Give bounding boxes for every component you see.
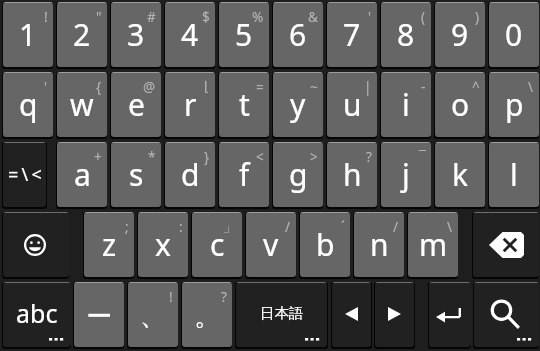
staticText: / (393, 218, 399, 236)
staticText: / (285, 218, 291, 236)
staticText: j (402, 154, 410, 195)
button[interactable]: f (219, 142, 269, 207)
staticText: s (129, 154, 144, 195)
staticText: k (452, 154, 469, 195)
button[interactable]: t (219, 72, 269, 137)
button[interactable]: b (300, 212, 350, 277)
button[interactable]: Search (474, 282, 539, 347)
button[interactable]: 2 (57, 2, 107, 67)
button[interactable]: Move cursor left (332, 282, 371, 347)
button[interactable]: u (327, 72, 377, 137)
button[interactable]: h (327, 142, 377, 207)
staticText: ¯ (419, 148, 426, 166)
staticText: 日本語 (260, 304, 304, 322)
staticText: ' (44, 78, 48, 96)
staticText: : (179, 218, 183, 236)
button[interactable]: n (354, 212, 404, 277)
button[interactable]: j (381, 142, 431, 207)
staticText: 8 (397, 14, 415, 55)
staticText: r (184, 84, 197, 125)
button[interactable]: Symbols (3, 142, 46, 207)
staticText: 3 (127, 14, 145, 55)
staticText: } (204, 148, 210, 166)
staticText: z (102, 224, 117, 265)
staticText: ( (421, 8, 426, 26)
button[interactable]: 。 (182, 282, 232, 347)
staticText: g (289, 154, 308, 195)
button[interactable]: q (3, 72, 53, 137)
staticText: + (94, 148, 102, 166)
staticText: ' (368, 8, 372, 26)
button[interactable]: m (408, 212, 458, 277)
staticText: ) (475, 8, 480, 26)
button[interactable]: x (138, 212, 188, 277)
staticText: 4 (181, 14, 199, 55)
button[interactable]: Japanese (236, 282, 327, 347)
button[interactable]: 1 (3, 2, 53, 67)
staticText: 7 (343, 14, 361, 55)
staticText: ~ (310, 78, 318, 96)
button[interactable]: d (165, 142, 215, 207)
button[interactable]: Backspace (473, 212, 539, 277)
button[interactable]: 9 (435, 2, 485, 67)
button[interactable]: v (246, 212, 296, 277)
button[interactable]: 0 (489, 2, 539, 67)
button[interactable]: g (273, 142, 323, 207)
button[interactable]: 、 (128, 282, 178, 347)
button[interactable]: 5 (219, 2, 269, 67)
button[interactable]: 3 (111, 2, 161, 67)
staticText: $ (202, 8, 210, 26)
staticText: i (402, 84, 410, 125)
button[interactable]: Move cursor right (375, 282, 414, 347)
button[interactable]: 7 (327, 2, 377, 67)
staticText: w (70, 84, 94, 125)
staticText: ー (86, 300, 112, 333)
button[interactable]: w (57, 72, 107, 137)
button[interactable]: i (381, 72, 431, 137)
staticText: " (96, 8, 102, 26)
button[interactable]: p (489, 72, 539, 137)
button[interactable]: r (165, 72, 215, 137)
staticText: ? (366, 148, 372, 166)
staticText: ! (169, 288, 173, 306)
button[interactable]: Enter (429, 282, 471, 347)
staticText: 6 (289, 14, 307, 55)
staticText: c (210, 224, 225, 265)
button[interactable]: e (111, 72, 161, 137)
button[interactable]: l (489, 142, 539, 207)
button[interactable]: o (435, 72, 485, 137)
staticText: < (256, 148, 264, 166)
staticText: | (364, 78, 372, 96)
staticText: x (155, 224, 171, 265)
staticText: v (263, 224, 279, 265)
staticText: u (343, 84, 362, 125)
button[interactable]: a (57, 142, 107, 207)
button[interactable]: 6 (273, 2, 323, 67)
staticText: b (316, 224, 335, 265)
button[interactable]: 8 (381, 2, 431, 67)
button[interactable]: Switch to letters (3, 282, 71, 347)
staticText: 5 (235, 14, 253, 55)
staticText: 0 (505, 14, 523, 55)
staticText: > (310, 148, 318, 166)
staticText: 1 (19, 14, 37, 55)
staticText: ; (125, 218, 129, 236)
staticText: l (510, 154, 518, 195)
staticText: \ (447, 218, 453, 236)
button[interactable]: 4 (165, 2, 215, 67)
button[interactable]: z (84, 212, 134, 277)
staticText: 。 (194, 300, 220, 333)
staticText: ? (221, 288, 227, 306)
button[interactable]: y (273, 72, 323, 137)
button[interactable]: c (192, 212, 242, 277)
button[interactable]: k (435, 142, 485, 207)
staticText: @ (143, 78, 156, 96)
staticText: e (128, 84, 145, 125)
button[interactable]: s (111, 142, 161, 207)
staticText: # (147, 8, 156, 26)
button[interactable]: Emoji (3, 212, 69, 277)
button[interactable]: ー (74, 282, 124, 347)
staticText: ⌊ (204, 78, 210, 94)
staticText: { (96, 78, 102, 96)
staticText: \ (528, 78, 534, 96)
